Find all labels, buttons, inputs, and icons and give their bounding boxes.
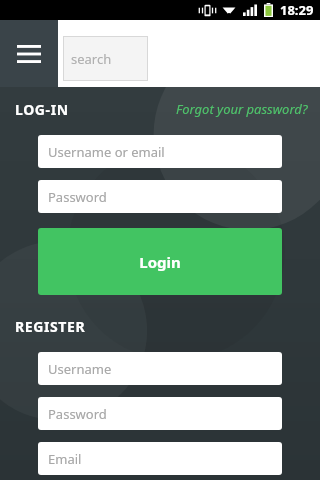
staticText: REGISTER — [15, 317, 86, 336]
button[interactable]: Forgot your password? — [174, 98, 310, 120]
staticText: Login — [139, 252, 181, 272]
button[interactable]: Password — [38, 180, 282, 213]
staticText: Password — [48, 405, 107, 423]
staticText: Username — [48, 360, 112, 378]
button[interactable]: Email — [38, 442, 282, 475]
button[interactable]: Username or email — [38, 135, 282, 168]
button[interactable]: Open navigation menu — [0, 20, 58, 87]
staticText: LOG-IN — [15, 100, 69, 119]
button[interactable]: Username — [38, 352, 282, 385]
staticText: Username or email — [48, 143, 165, 161]
staticText: Forgot your password? — [176, 100, 308, 118]
staticText: Password — [48, 188, 107, 206]
staticText: search people — [71, 50, 148, 68]
button[interactable]: Login — [38, 228, 282, 295]
button[interactable]: search people — [63, 36, 148, 81]
button[interactable]: Password — [38, 397, 282, 430]
staticText: Email — [48, 450, 82, 468]
staticText: 18:29 — [280, 1, 314, 19]
